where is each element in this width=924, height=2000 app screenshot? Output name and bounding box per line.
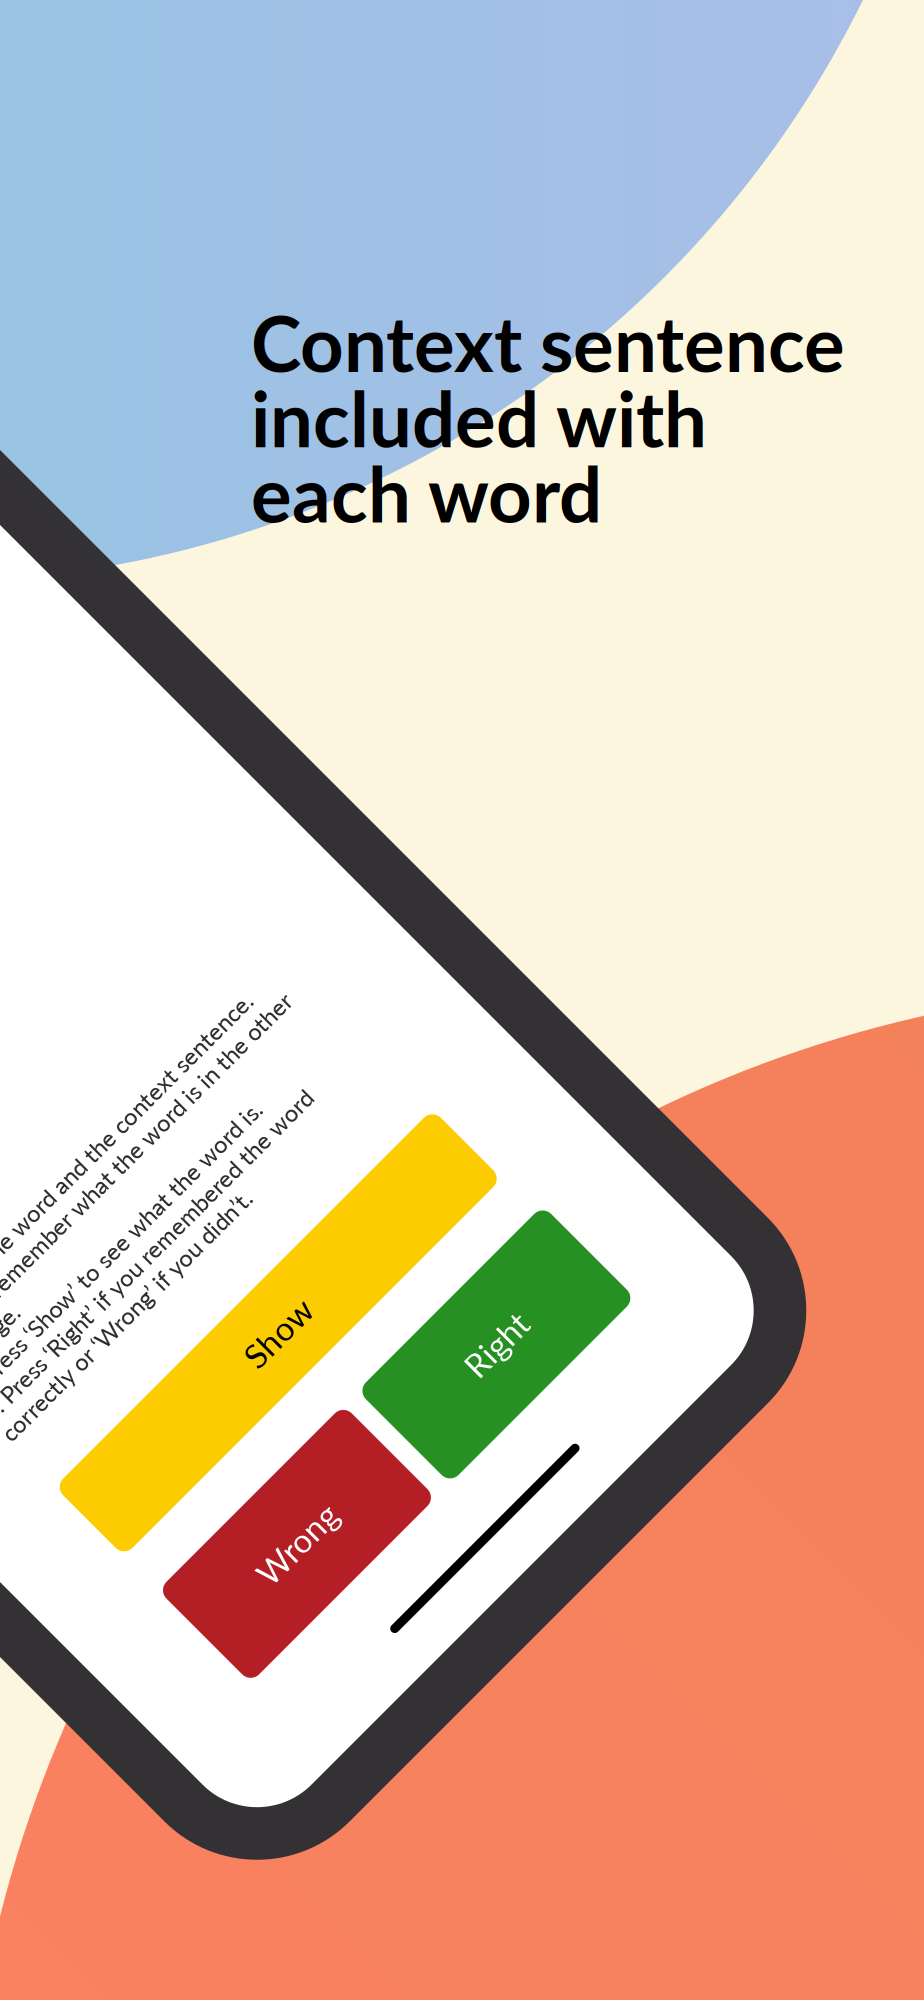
staticText: each word bbox=[251, 447, 602, 539]
staticText: Context sentence bbox=[251, 297, 845, 388]
staticText: 1. Look at the word and the context sent… bbox=[0, 1198, 161, 1227]
staticText: correctly or ‘Wrong’ if you didn’t. bbox=[0, 1337, 21, 1366]
staticText: 3. Press ‘Show’ to see what the word is. bbox=[0, 1281, 91, 1310]
button[interactable]: Right bbox=[0, 1568, 221, 1699]
staticText: Right bbox=[52, 1613, 128, 1653]
staticText: 4. Press ‘Right’ if you remembered the w… bbox=[0, 1309, 135, 1338]
staticText: included with bbox=[251, 372, 707, 463]
staticText: 2. Try to remember what the word is in t… bbox=[0, 1226, 189, 1254]
button[interactable]: Show bbox=[0, 1422, 211, 1520]
